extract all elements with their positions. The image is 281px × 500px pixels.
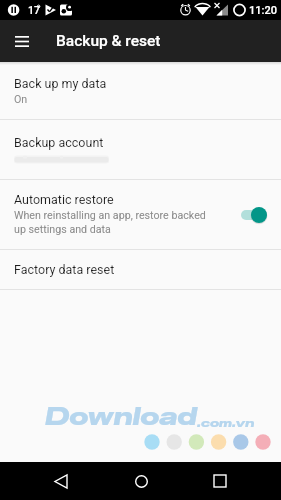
staticText: Back up my data (14, 76, 107, 91)
staticText: Backup & reset (56, 32, 161, 50)
staticText: On (14, 93, 28, 106)
staticText: Automatic restore (14, 192, 114, 207)
button[interactable]: Factory data reset (0, 250, 281, 289)
staticText: Download (45, 401, 197, 431)
button[interactable]: Recent apps (201, 462, 239, 500)
button[interactable]: Back up my data (0, 62, 281, 119)
button[interactable]: Back (42, 462, 80, 500)
button[interactable]: Backup account (0, 120, 281, 179)
button[interactable]: Automatic restore (0, 180, 281, 249)
button[interactable]: Open navigation menu (9, 28, 35, 54)
staticText: .com.vn (197, 415, 255, 430)
staticText: 11:20 (249, 4, 277, 17)
staticText: 17 (28, 4, 40, 16)
staticText: When reinstalling an app, restore backed… (14, 209, 213, 236)
staticText: Factory data reset (14, 262, 115, 277)
staticText: Backup account (14, 135, 104, 150)
button[interactable]: Home (122, 462, 160, 500)
